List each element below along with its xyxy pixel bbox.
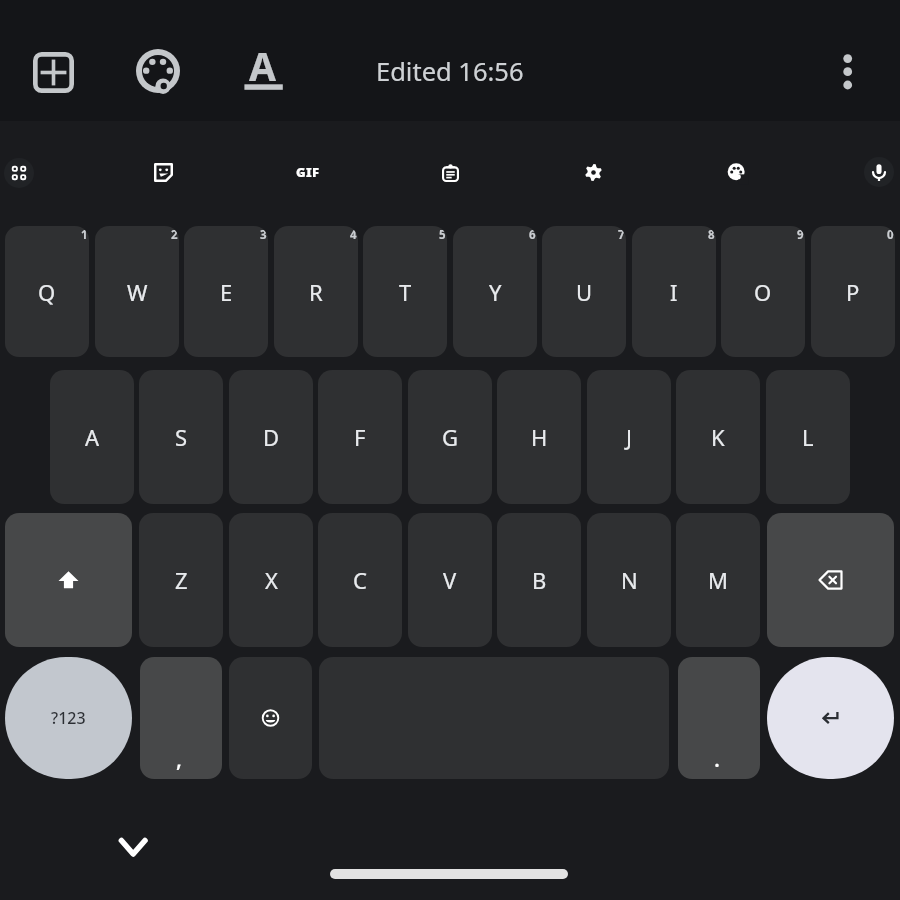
staticText: M <box>708 565 728 595</box>
staticText: Z <box>175 565 188 595</box>
staticText: B <box>532 565 547 595</box>
button[interactable]: V <box>408 513 492 647</box>
staticText: G <box>442 422 459 452</box>
staticText: A <box>85 422 100 452</box>
staticText: E <box>220 277 233 307</box>
staticText: H <box>531 422 548 452</box>
staticText: Y <box>489 277 502 307</box>
staticText: I <box>670 277 678 307</box>
staticText: 6 <box>529 227 536 243</box>
button[interactable]: Add <box>33 52 74 93</box>
button[interactable]: N <box>587 513 671 647</box>
staticText: , <box>176 743 183 773</box>
staticText: Edited 16:56 <box>376 54 524 89</box>
staticText: 9 <box>797 227 804 243</box>
staticText: D <box>263 422 280 452</box>
button[interactable]: ?123 <box>5 657 132 779</box>
staticText: J <box>626 422 633 452</box>
button[interactable]: O <box>721 226 805 357</box>
button[interactable]: C <box>318 513 402 647</box>
button[interactable]: Background options <box>136 49 180 93</box>
button[interactable]: Stickers <box>154 163 173 182</box>
button[interactable]: L <box>766 370 850 504</box>
button[interactable]: A <box>50 370 134 504</box>
button[interactable]: P <box>811 226 895 357</box>
button[interactable]: Shift <box>5 513 132 647</box>
staticText: O <box>754 277 772 307</box>
button[interactable]: Clipboard <box>442 165 459 182</box>
button[interactable]: X <box>229 513 313 647</box>
staticText: R <box>309 277 323 307</box>
button[interactable]: R <box>274 226 358 357</box>
staticText: 8 <box>708 227 715 243</box>
button[interactable]: D <box>229 370 313 504</box>
button[interactable]: U <box>542 226 626 357</box>
staticText: ?123 <box>51 707 86 729</box>
staticText: S <box>175 422 188 452</box>
staticText: 2 <box>171 227 178 243</box>
button[interactable]: Voice input <box>864 157 894 187</box>
button[interactable]: Hide keyboard <box>109 823 157 871</box>
staticText: K <box>711 422 725 452</box>
button[interactable]: W <box>95 226 179 357</box>
staticText: A <box>249 39 276 87</box>
staticText: GIF <box>296 163 320 181</box>
staticText: Q <box>38 277 56 307</box>
staticText: L <box>802 422 814 452</box>
button[interactable]: G <box>408 370 492 504</box>
staticText: 1 <box>81 227 88 243</box>
button[interactable]: Emoji <box>229 657 312 779</box>
button[interactable]: F <box>318 370 402 504</box>
button[interactable]: B <box>497 513 581 647</box>
button[interactable]: Z <box>139 513 223 647</box>
staticText: P <box>846 277 860 307</box>
staticText: 3 <box>260 227 267 243</box>
staticText: X <box>265 565 278 595</box>
button[interactable]: Backspace <box>767 513 894 647</box>
staticText: U <box>576 277 593 307</box>
staticText: . <box>714 743 720 773</box>
button[interactable]: K <box>676 370 760 504</box>
staticText: 0 <box>887 227 894 243</box>
button[interactable]: H <box>497 370 581 504</box>
button[interactable]: S <box>139 370 223 504</box>
staticText: F <box>354 422 366 452</box>
button[interactable]: GIF <box>288 160 328 184</box>
staticText: 4 <box>350 227 357 243</box>
button[interactable]: Toolbar <box>4 158 34 188</box>
button[interactable]: Period <box>678 657 760 779</box>
button[interactable]: Comma <box>140 657 222 779</box>
button[interactable]: Themes <box>728 164 745 181</box>
button[interactable]: J <box>587 370 671 504</box>
staticText: 7 <box>618 227 625 243</box>
staticText: V <box>443 565 457 595</box>
button[interactable]: I <box>632 226 716 357</box>
button[interactable]: Y <box>453 226 537 357</box>
button[interactable]: Q <box>5 226 89 357</box>
staticText: T <box>399 277 412 307</box>
staticText: 5 <box>439 227 446 243</box>
staticText: C <box>353 565 367 595</box>
button[interactable]: Settings <box>585 164 602 181</box>
button[interactable]: More options <box>827 47 869 95</box>
button[interactable]: T <box>363 226 447 357</box>
button[interactable]: Enter <box>767 657 894 779</box>
staticText: N <box>621 565 638 595</box>
staticText: W <box>127 277 148 307</box>
button[interactable]: Formatting <box>239 45 288 93</box>
button[interactable]: E <box>184 226 268 357</box>
button[interactable]: M <box>676 513 760 647</box>
